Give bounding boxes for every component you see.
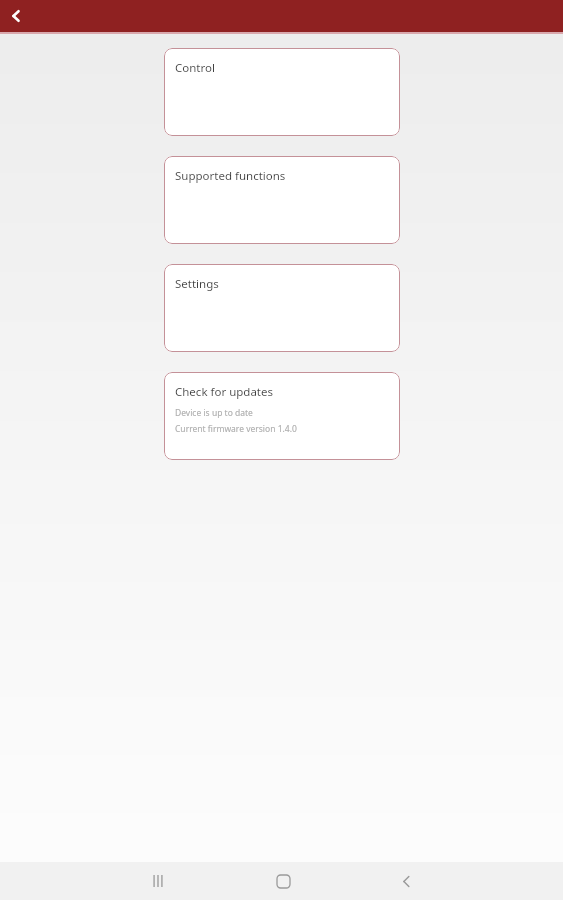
button[interactable]: Supported functions: [164, 156, 400, 244]
staticText: Settings: [175, 276, 219, 292]
button[interactable]: Control: [164, 48, 400, 136]
button[interactable]: Back: [387, 862, 425, 900]
button[interactable]: Recents: [0, 862, 563, 900]
staticText: Control: [175, 60, 215, 76]
button[interactable]: Settings: [164, 264, 400, 352]
button[interactable]: Check for updates: [164, 372, 400, 460]
staticText: Current firmware version 1.4.0: [175, 423, 297, 435]
button[interactable]: Home: [264, 862, 302, 900]
staticText: Device is up to date: [175, 407, 253, 419]
staticText: Supported functions: [175, 168, 286, 184]
staticText: Check for updates: [175, 384, 274, 400]
button[interactable]: Back: [0, 0, 32, 32]
